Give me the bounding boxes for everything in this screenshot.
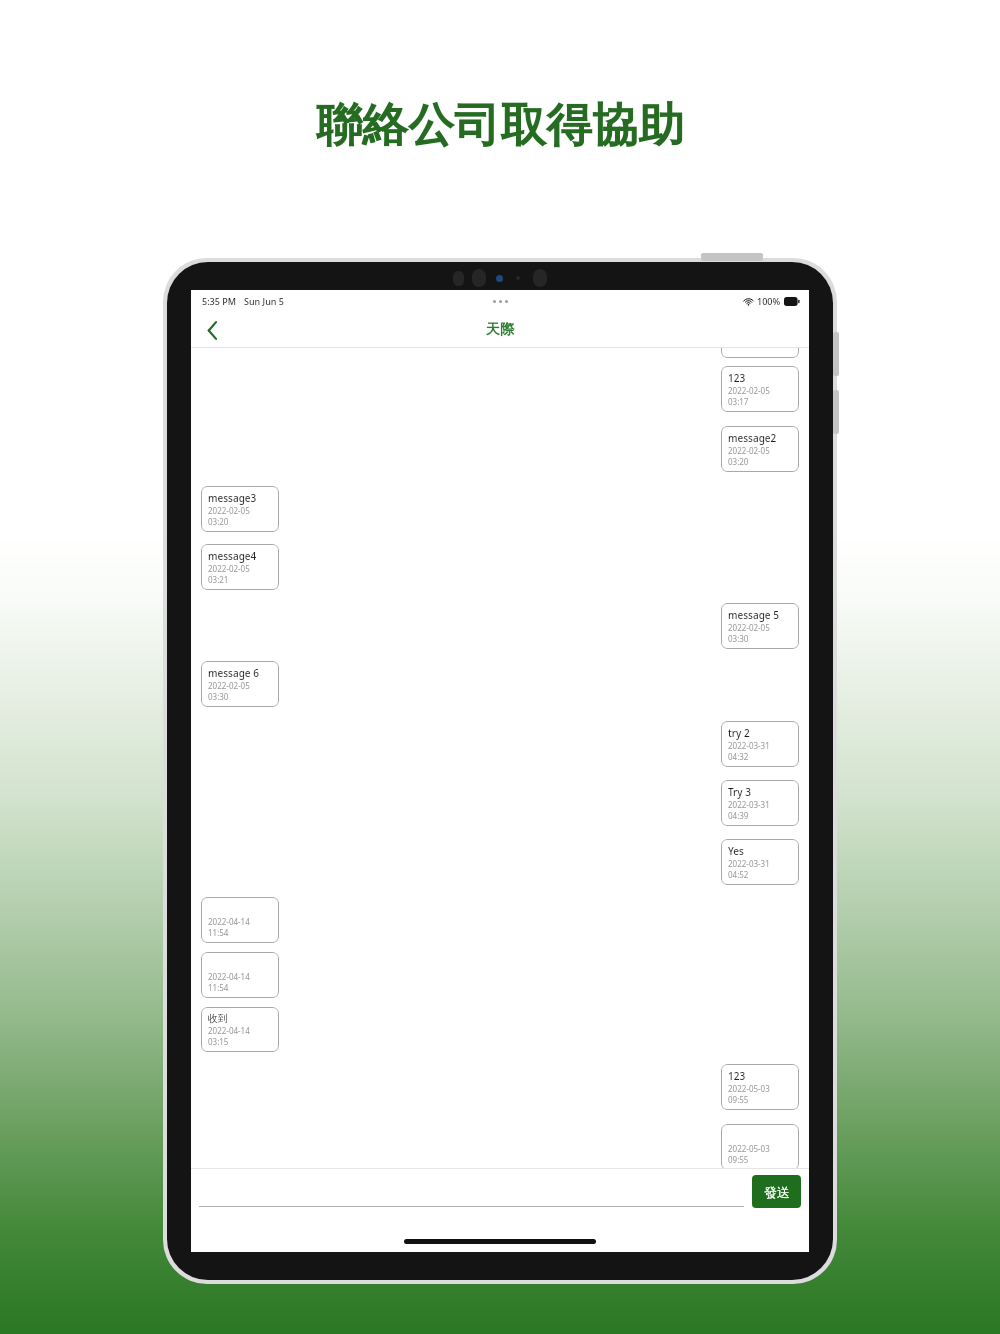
button[interactable]: message 6 (201, 661, 279, 707)
staticText: Try 3 (728, 785, 751, 799)
staticText: Yes (728, 844, 744, 858)
staticText: 發送 (764, 1184, 790, 1200)
staticText: 2022-04-14 11:54 (208, 916, 272, 938)
button[interactable]: Yes (721, 839, 799, 885)
staticText: 2022-04-14 11:54 (208, 971, 272, 993)
staticText: 2022-02-05 03:21 (208, 563, 272, 585)
button[interactable]: 收到 (201, 1007, 279, 1052)
staticText: 2022-02-05 03:20 (728, 445, 792, 467)
staticText: 2022-02-05 03:17 (728, 385, 792, 407)
button[interactable] (199, 1175, 744, 1207)
button[interactable]: 123 (721, 1064, 799, 1110)
button[interactable]: 2022-05-03 09:55 (721, 1124, 799, 1170)
button[interactable]: Try 3 (721, 780, 799, 826)
staticText: 2022-02-05 03:30 (728, 622, 792, 644)
staticText: 100% (757, 295, 781, 307)
staticText: 2022-05-03 09:55 (728, 1143, 792, 1165)
button[interactable]: message4 (201, 544, 279, 590)
staticText: 2022-02-05 03:20 (208, 505, 272, 527)
staticText: message 6 (208, 666, 259, 680)
staticText: 2022-03-31 04:32 (728, 740, 792, 762)
staticText: message3 (208, 491, 257, 505)
button[interactable]: 2022-04-14 11:54 (201, 952, 279, 998)
staticText: 2022-04-14 03:15 (208, 1025, 272, 1047)
staticText: 2022-02-05 03:30 (208, 680, 272, 702)
button[interactable]: 發送 (752, 1175, 801, 1208)
staticText: 聯絡公司取得協助 (316, 97, 684, 155)
button[interactable]: message2 (721, 426, 799, 472)
button[interactable]: try 2 (721, 721, 799, 767)
staticText: 2022-03-31 04:39 (728, 799, 792, 821)
staticText: Sun Jun 5 (244, 295, 284, 307)
button[interactable]: 123 (721, 366, 799, 412)
staticText: message2 (728, 431, 777, 445)
button[interactable]: message3 (201, 486, 279, 532)
staticText: 2022-03-31 04:52 (728, 858, 792, 880)
staticText: 5:35 PM (202, 295, 236, 307)
staticText: 收到 (208, 1012, 228, 1025)
staticText: message4 (208, 549, 257, 563)
staticText: try 2 (728, 726, 750, 740)
staticText: 2022-05-03 09:55 (728, 1083, 792, 1105)
staticText: 123 (728, 1069, 746, 1083)
button[interactable]: Back (195, 313, 229, 347)
button[interactable]: message 5 (721, 603, 799, 649)
staticText: message 5 (728, 608, 779, 622)
staticText: 天際 (486, 321, 514, 339)
button[interactable]: 2022-04-14 11:54 (201, 897, 279, 943)
staticText: 123 (728, 371, 746, 385)
